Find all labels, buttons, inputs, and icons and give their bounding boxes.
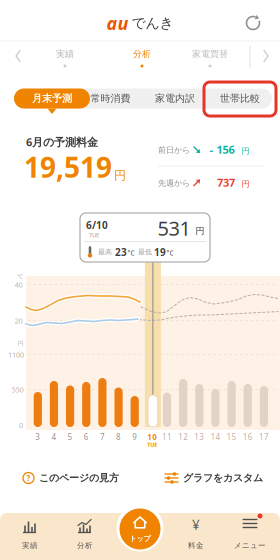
button[interactable]: 月末予測: [14, 88, 90, 108]
staticText: トップ: [129, 534, 150, 543]
staticText: 6/10: [86, 218, 108, 232]
staticText: 8: [116, 432, 121, 442]
staticText: - 156: [209, 142, 234, 157]
staticText: 40: [14, 279, 22, 290]
staticText: 3: [35, 432, 40, 442]
button[interactable]: 分析: [61, 513, 109, 557]
staticText: このページの見方: [39, 472, 119, 484]
staticText: 19: [154, 245, 166, 259]
staticText: 14: [210, 432, 220, 442]
staticText: 円: [17, 340, 23, 347]
staticText: 10: [147, 432, 157, 442]
staticText: °C: [166, 249, 173, 257]
staticText: 23: [115, 245, 127, 259]
button[interactable]: 分析: [114, 42, 170, 66]
staticText: グラフをカスタム: [183, 472, 263, 484]
staticText: 分析: [133, 48, 151, 60]
staticText: 12: [178, 432, 188, 442]
staticText: 550: [11, 384, 23, 395]
staticText: au: [106, 11, 128, 35]
staticText: 実績: [56, 48, 74, 60]
button[interactable]: グラフをカスタム: [165, 472, 263, 484]
button[interactable]: 実績: [6, 513, 54, 557]
staticText: 17: [259, 432, 269, 442]
staticText: TUE: [147, 441, 157, 448]
button[interactable]: ¥: [172, 513, 220, 557]
staticText: 11: [162, 432, 172, 442]
button[interactable]: 家電内訳: [143, 88, 207, 108]
staticText: 531: [157, 214, 190, 242]
staticText: 前日から: [158, 145, 190, 155]
staticText: 6月の予測料金: [26, 134, 98, 149]
staticText: 常時消費: [90, 92, 130, 105]
staticText: 円: [241, 179, 249, 189]
staticText: 0: [19, 420, 23, 430]
staticText: 円: [114, 168, 126, 183]
button[interactable]: 更新: [242, 12, 264, 34]
staticText: 1100: [8, 349, 24, 360]
button[interactable]: 前のページ: [8, 50, 28, 61]
staticText: メニュー: [234, 541, 266, 550]
button[interactable]: 常時消費: [78, 88, 142, 108]
staticText: ?: [26, 473, 30, 483]
staticText: 6: [84, 432, 89, 442]
staticText: 5: [68, 432, 73, 442]
staticText: ¥: [192, 515, 200, 534]
button[interactable]: メニュー: [226, 513, 274, 557]
button[interactable]: トップ: [119, 508, 160, 549]
staticText: 家電買替: [192, 48, 228, 60]
staticText: 13: [194, 432, 204, 442]
staticText: 実績: [22, 541, 38, 550]
button[interactable]: 世帯比較: [208, 88, 272, 108]
staticText: 9: [132, 432, 137, 442]
staticText: 最低: [138, 248, 152, 256]
staticText: °C: [127, 249, 134, 257]
staticText: 最高: [98, 248, 112, 256]
staticText: 16: [243, 432, 253, 442]
staticText: 7: [100, 432, 105, 442]
staticText: 世帯比較: [220, 92, 260, 105]
staticText: 円: [195, 225, 204, 237]
staticText: 737: [217, 175, 235, 190]
button[interactable]: 実績: [37, 42, 93, 66]
staticText: 月末予測: [32, 92, 72, 105]
button[interactable]: ?: [23, 472, 119, 484]
staticText: でんき: [131, 14, 173, 32]
staticText: 円: [241, 146, 249, 156]
staticText: ℃: [17, 272, 23, 281]
staticText: 家電内訳: [155, 92, 195, 105]
staticText: 分析: [77, 541, 93, 550]
staticText: 19,519: [24, 148, 112, 186]
staticText: 15: [227, 432, 237, 442]
staticText: 料金: [188, 541, 204, 550]
staticText: 先週から: [158, 178, 190, 188]
button[interactable]: 次のページ: [256, 50, 276, 61]
staticText: 20: [14, 315, 22, 326]
staticText: 4: [51, 432, 56, 442]
staticText: TUE: [89, 231, 99, 239]
button[interactable]: 家電買替: [182, 42, 238, 66]
